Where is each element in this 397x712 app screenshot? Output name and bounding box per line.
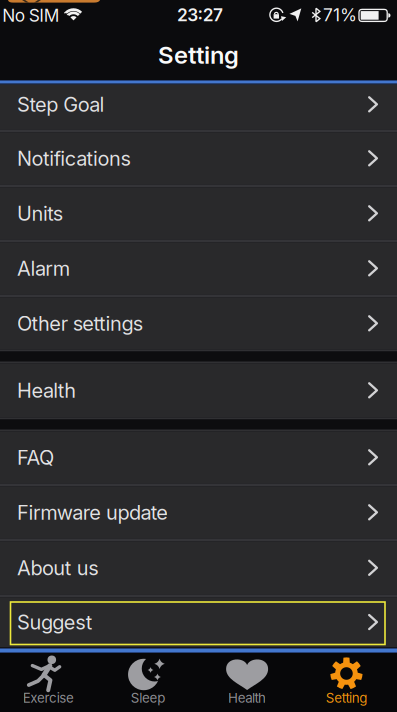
staticText: Setting — [158, 41, 239, 69]
staticText: Alarm — [17, 257, 70, 280]
button[interactable]: FAQ — [0, 431, 397, 483]
staticText: No SIM — [2, 5, 60, 26]
button[interactable]: Health — [0, 363, 397, 417]
staticText: 71% — [323, 5, 357, 25]
button[interactable]: Units — [0, 187, 397, 239]
staticText: Firmware update — [17, 501, 168, 524]
button[interactable]: Suggest — [0, 597, 397, 647]
staticText: Sleep — [131, 690, 165, 706]
button[interactable]: Alarm — [0, 242, 397, 294]
button[interactable]: Step Goal — [0, 84, 397, 129]
button[interactable]: Health — [198, 653, 298, 712]
staticText: Exercise — [23, 690, 74, 706]
staticText: 23:27 — [177, 5, 223, 25]
staticText: Setting — [326, 690, 367, 706]
button[interactable]: Sleep — [99, 653, 198, 712]
button[interactable]: Notifications — [0, 132, 397, 184]
staticText: Units — [17, 202, 63, 225]
button[interactable]: Exercise — [0, 653, 99, 712]
button[interactable]: Other settings — [0, 297, 397, 349]
button[interactable]: Setting — [298, 653, 397, 712]
staticText: About us — [17, 556, 98, 580]
staticText: Notifications — [17, 147, 130, 170]
staticText: Health — [228, 690, 266, 706]
staticText: Health — [17, 379, 76, 402]
staticText: FAQ — [17, 446, 54, 469]
button[interactable]: About us — [0, 541, 397, 594]
staticText: Other settings — [17, 312, 143, 335]
staticText: Suggest — [17, 610, 93, 634]
button[interactable]: Firmware update — [0, 486, 397, 538]
staticText: Step Goal — [17, 93, 105, 116]
